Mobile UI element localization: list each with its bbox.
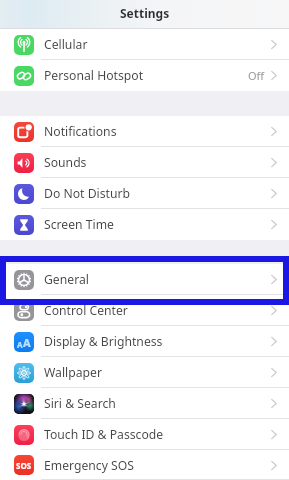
staticText: Cellular — [44, 36, 88, 53]
button[interactable]: Personal Hotspot — [0, 60, 289, 91]
button[interactable]: Siri & Search — [0, 388, 289, 419]
staticText: Screen Time — [44, 216, 114, 233]
staticText: Off — [248, 68, 265, 83]
other: Selected: General — [0, 256, 289, 305]
staticText: Emergency SOS — [44, 457, 134, 474]
staticText: A — [23, 335, 31, 350]
button[interactable]: Wallpaper — [0, 357, 289, 388]
button[interactable]: Notifications — [0, 116, 289, 147]
staticText: Settings — [120, 5, 170, 21]
staticText: SOS — [16, 460, 32, 471]
button[interactable]: SOS — [0, 450, 289, 480]
button[interactable]: Touch ID & Passcode — [0, 419, 289, 450]
staticText: Do Not Disturb — [44, 185, 130, 202]
staticText: A — [17, 339, 23, 350]
staticText: Control Center — [44, 302, 128, 319]
staticText: General — [44, 271, 89, 288]
staticText: Touch ID & Passcode — [44, 426, 164, 443]
button[interactable]: General — [0, 264, 289, 295]
button[interactable]: Sounds — [0, 147, 289, 178]
button[interactable]: Control Center — [0, 295, 289, 326]
staticText: Siri & Search — [44, 395, 116, 412]
button[interactable]: Cellular — [0, 29, 289, 60]
staticText: Sounds — [44, 154, 87, 171]
button[interactable]: A — [0, 326, 289, 357]
button[interactable]: Do Not Disturb — [0, 178, 289, 209]
button[interactable]: Screen Time — [0, 209, 289, 240]
staticText: Display & Brightness — [44, 333, 163, 350]
staticText: Wallpaper — [44, 364, 102, 381]
staticText: Personal Hotspot — [44, 67, 144, 84]
staticText: Notifications — [44, 123, 117, 140]
